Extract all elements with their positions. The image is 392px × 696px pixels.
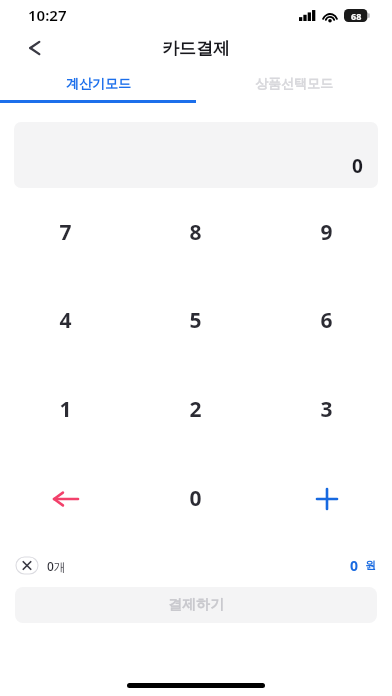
button[interactable]: Backspace (0, 454, 130, 543)
staticText: 0 (189, 484, 202, 513)
staticText: 0 (352, 153, 363, 179)
staticText: 3 (320, 395, 333, 424)
button[interactable]: 8 (130, 188, 261, 276)
button[interactable]: 계산기모드 (0, 66, 196, 100)
button[interactable]: Add (261, 454, 392, 543)
button[interactable]: 7 (0, 188, 130, 276)
staticText: 상품선택모드 (255, 75, 333, 91)
button[interactable]: Back (14, 30, 54, 66)
staticText: 계산기모드 (66, 75, 131, 91)
button[interactable]: 1 (0, 365, 130, 454)
staticText: 0개 (47, 558, 66, 574)
button[interactable]: 9 (261, 188, 392, 276)
staticText: 결제하기 (168, 596, 224, 614)
staticText: 카드결제 (162, 38, 230, 59)
staticText: 원 (365, 558, 376, 572)
button[interactable]: 3 (261, 365, 392, 454)
staticText: 5 (189, 306, 202, 335)
button[interactable]: 결제하기 (15, 587, 377, 623)
staticText: 9 (320, 218, 333, 247)
staticText: 68 (351, 10, 362, 22)
button[interactable]: 0개 (16, 557, 66, 574)
button[interactable]: 5 (130, 276, 261, 365)
staticText: 1 (59, 395, 72, 424)
staticText: 2 (189, 395, 202, 424)
staticText: 4 (59, 306, 72, 335)
staticText: 7 (59, 218, 72, 247)
button[interactable]: 2 (130, 365, 261, 454)
button[interactable]: 4 (0, 276, 130, 365)
button[interactable]: 상품선택모드 (196, 66, 392, 100)
staticText: 0 (350, 556, 359, 575)
button[interactable]: 0 (130, 454, 261, 543)
staticText: 10:27 (28, 5, 67, 25)
staticText: 8 (189, 218, 202, 247)
staticText: 6 (320, 306, 333, 335)
button[interactable]: 6 (261, 276, 392, 365)
